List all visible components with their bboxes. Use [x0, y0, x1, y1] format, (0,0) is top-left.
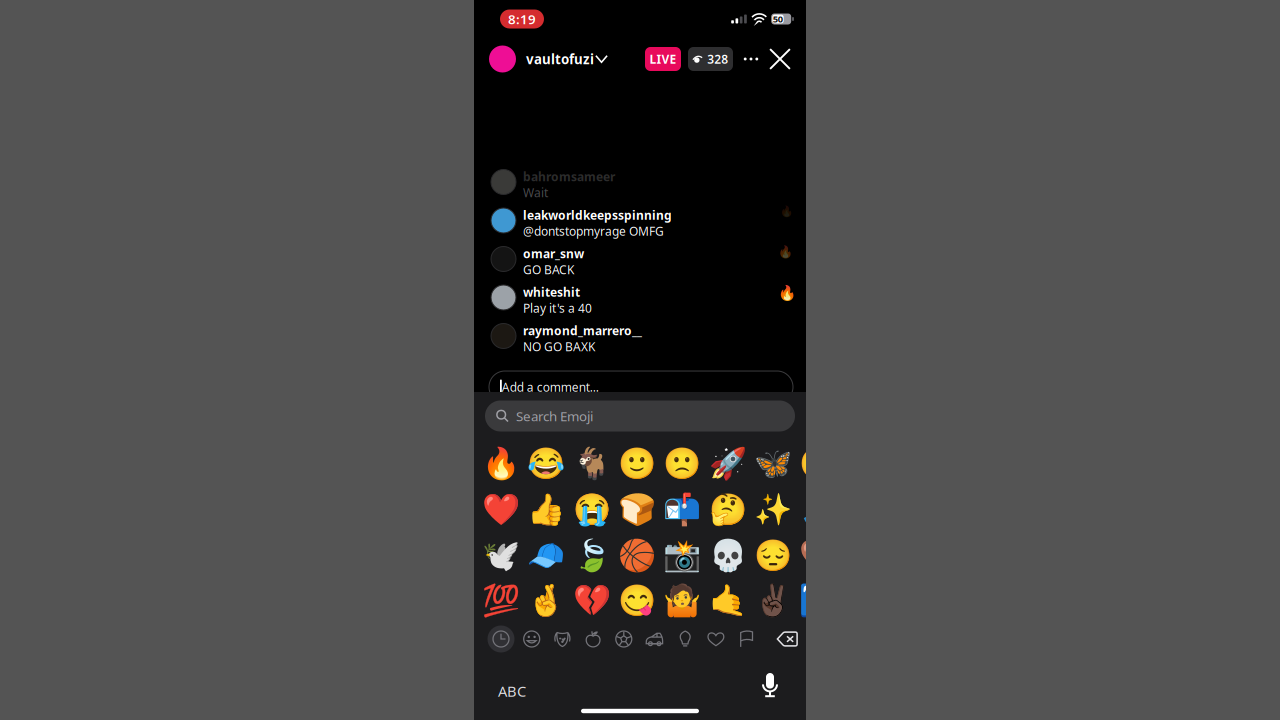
button[interactable]: 🤔 [707, 489, 749, 531]
staticText: 🦋 [754, 446, 792, 481]
staticText: 50 [773, 13, 783, 25]
button[interactable]: ✨ [752, 489, 794, 531]
staticText: 📬 [663, 492, 701, 527]
staticText: Wait [523, 184, 548, 200]
button[interactable]: Food and drink [579, 624, 608, 653]
staticText: 🤙 [709, 583, 747, 618]
button[interactable]: 🐐 [571, 443, 613, 485]
staticText: Search Emoji [516, 407, 593, 425]
staticText: 🤷 [663, 583, 701, 618]
button[interactable]: 🤷 [661, 580, 703, 622]
staticText: 🔥 [778, 285, 796, 301]
staticText: ABC [498, 681, 526, 701]
staticText: ❤️ [482, 492, 520, 527]
staticText: 💔 [573, 583, 611, 618]
staticText: bahromsameer [523, 168, 615, 184]
staticText: ✌🏿 [754, 583, 792, 618]
button[interactable]: Search Emoji [485, 400, 795, 431]
staticText: 🤎 [799, 538, 837, 573]
staticText: 🐐 [573, 446, 611, 481]
button[interactable]: 🙁 [661, 443, 703, 485]
button[interactable]: 💯 [480, 580, 522, 622]
staticText: 😭 [573, 492, 611, 527]
button[interactable]: 🕊️ [480, 534, 522, 576]
staticText: GO BACK [523, 261, 574, 277]
staticText: 😔 [754, 538, 792, 573]
staticText: NO GO BAXK [523, 338, 595, 354]
button[interactable]: 🙏 [797, 489, 839, 531]
button[interactable]: 😢 [797, 443, 839, 485]
button[interactable]: 🍃 [571, 534, 613, 576]
staticText: 🤞 [527, 583, 565, 618]
staticText: LIVE [649, 51, 676, 67]
button[interactable]: Delete [772, 625, 802, 653]
button[interactable]: 😔 [752, 534, 794, 576]
button[interactable]: ABC [498, 675, 544, 707]
staticText: 🍃 [573, 538, 611, 573]
button[interactable]: 🚀 [707, 443, 749, 485]
button[interactable]: Symbols [701, 624, 730, 653]
staticText: 💯 [482, 583, 520, 618]
button[interactable]: 🍞 [616, 489, 658, 531]
button[interactable]: 💔 [571, 580, 613, 622]
staticText: 🙂 [618, 446, 656, 481]
staticText: 🔥 [482, 446, 520, 481]
button[interactable]: 🟦 [797, 580, 839, 622]
button[interactable]: 📬 [661, 489, 703, 531]
staticText: 🚀 [709, 446, 747, 481]
button[interactable]: 🤙 [707, 580, 749, 622]
staticText: Play it's a 40 [523, 300, 592, 316]
button[interactable]: 328 [688, 47, 733, 71]
button[interactable]: More options [739, 47, 763, 71]
staticText: 🤔 [709, 492, 747, 527]
button[interactable]: 📸 [661, 534, 703, 576]
button[interactable]: Animals and nature [548, 624, 577, 653]
button[interactable]: Close live video [767, 46, 793, 72]
button[interactable]: Objects [671, 624, 700, 653]
staticText: whiteshit [523, 284, 580, 300]
button[interactable]: Dictation [760, 672, 780, 702]
button[interactable]: 🔥 [480, 443, 522, 485]
staticText: 🍞 [618, 492, 656, 527]
staticText: ✨ [754, 492, 792, 527]
button[interactable]: Recently used emoji [486, 624, 515, 653]
staticText: 💀 [709, 538, 747, 573]
button[interactable]: Smileys and people [517, 624, 546, 653]
button[interactable]: Travel and places [640, 624, 669, 653]
staticText: 📸 [663, 538, 701, 573]
staticText: @dontstopmyrage OMFG [523, 223, 664, 239]
staticText: 😢 [799, 446, 837, 481]
staticText: 🔥 [779, 205, 792, 217]
button[interactable]: 😋 [616, 580, 658, 622]
button[interactable]: 👍 [525, 489, 567, 531]
staticText: 🙏 [799, 492, 837, 527]
button[interactable]: Flags [732, 624, 761, 653]
staticText: 👍 [527, 492, 565, 527]
button[interactable]: ❤️ [480, 489, 522, 531]
button[interactable]: ✌🏿 [752, 580, 794, 622]
staticText: leakworldkeepsspinning [523, 207, 672, 223]
staticText: 🏀 [618, 538, 656, 573]
button[interactable]: 💀 [707, 534, 749, 576]
staticText: 🙁 [663, 446, 701, 481]
staticText: 😂 [527, 446, 565, 481]
button[interactable]: vaultofuzi [489, 44, 613, 74]
staticText: raymond_marrero__ [523, 322, 642, 338]
button[interactable]: 😭 [571, 489, 613, 531]
button[interactable]: Activity [609, 624, 638, 653]
button[interactable]: 😂 [525, 443, 567, 485]
button[interactable]: 🤞 [525, 580, 567, 622]
staticText: 😋 [618, 583, 656, 618]
staticText: 🧢 [527, 538, 565, 573]
staticText: 🔥 [777, 245, 792, 259]
button[interactable]: Add a comment... [489, 371, 793, 403]
button[interactable]: 🏀 [616, 534, 658, 576]
staticText: Add a comment... [502, 379, 599, 395]
button[interactable]: 🤎 [797, 534, 839, 576]
staticText: vaultofuzi [526, 50, 594, 68]
button[interactable]: 🙂 [616, 443, 658, 485]
staticText: omar_snw [523, 245, 584, 261]
button[interactable]: 🧢 [525, 534, 567, 576]
button[interactable]: 🦋 [752, 443, 794, 485]
staticText: 8:19 [508, 10, 536, 28]
